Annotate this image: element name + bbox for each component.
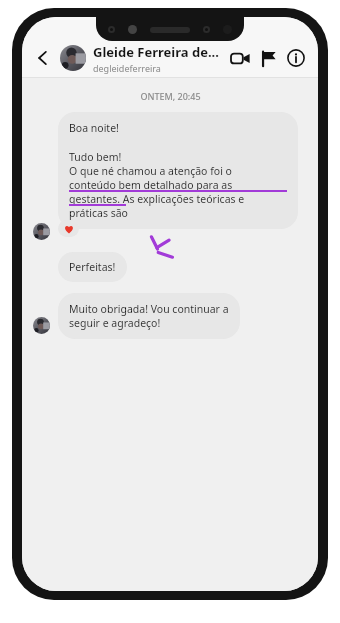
staticText: seguir e agradeço! xyxy=(69,316,161,330)
staticText: práticas são xyxy=(69,206,128,220)
button[interactable]: Boa noite! xyxy=(58,112,298,229)
staticText: Gleide Ferreira de... xyxy=(93,43,219,61)
staticText: Boa noite! xyxy=(69,121,119,135)
button[interactable]: Heart reaction xyxy=(58,220,79,237)
button[interactable]: Video call xyxy=(226,44,254,72)
staticText: gestantes. As explicações teóricas e xyxy=(69,192,245,206)
staticText: Perfeitas! xyxy=(69,260,116,274)
staticText: Muito obrigada! Vou continuar a xyxy=(69,302,229,316)
button[interactable]: Muito obrigada! Vou continuar a xyxy=(58,293,240,339)
staticText: conteúdo bem detalhado para as xyxy=(69,178,233,192)
staticText: Tudo bem! xyxy=(69,150,122,164)
button[interactable]: Flag xyxy=(254,44,282,72)
button[interactable]: Perfeitas! xyxy=(58,252,127,282)
button[interactable]: Info xyxy=(282,44,310,72)
staticText: ONTEM, 20:45 xyxy=(140,90,201,102)
staticText: O que né chamou a atenção foi o xyxy=(69,164,232,178)
button[interactable]: Gleide Ferreira de... xyxy=(93,43,226,74)
staticText: degleideferreira xyxy=(93,62,161,74)
button[interactable]: Back xyxy=(30,45,56,71)
